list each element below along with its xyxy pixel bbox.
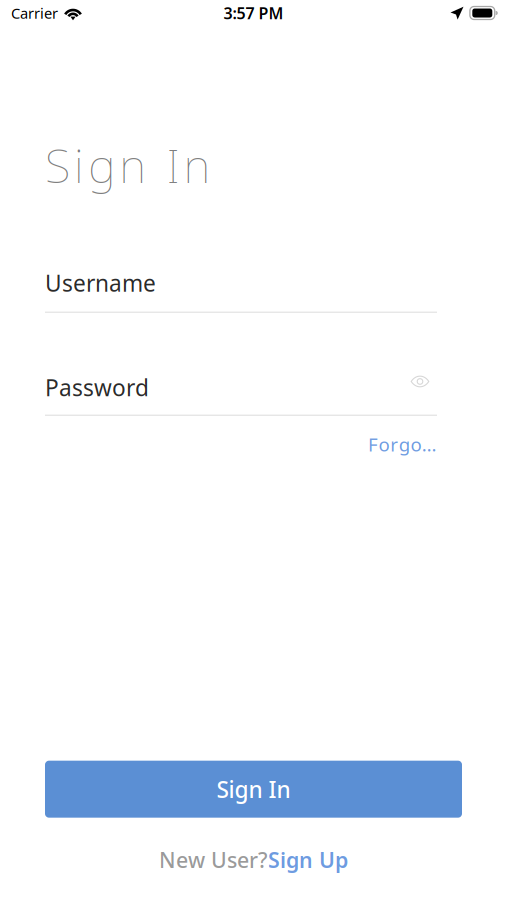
staticText: Sign Up bbox=[268, 846, 348, 874]
staticText: Forgot? bbox=[368, 432, 437, 457]
staticText: 3:57 PM bbox=[223, 2, 283, 24]
button[interactable]: Forgot? bbox=[368, 432, 437, 457]
staticText: New User? bbox=[159, 846, 268, 874]
staticText: Carrier bbox=[11, 3, 58, 23]
staticText: Sign In bbox=[45, 134, 211, 196]
button[interactable]: Sign In bbox=[45, 761, 462, 818]
button[interactable]: Show password bbox=[405, 372, 435, 388]
staticText: Sign In bbox=[216, 774, 290, 804]
button[interactable]: New User? bbox=[159, 846, 348, 874]
staticText: Username bbox=[45, 268, 156, 298]
staticText: Password bbox=[45, 372, 149, 403]
